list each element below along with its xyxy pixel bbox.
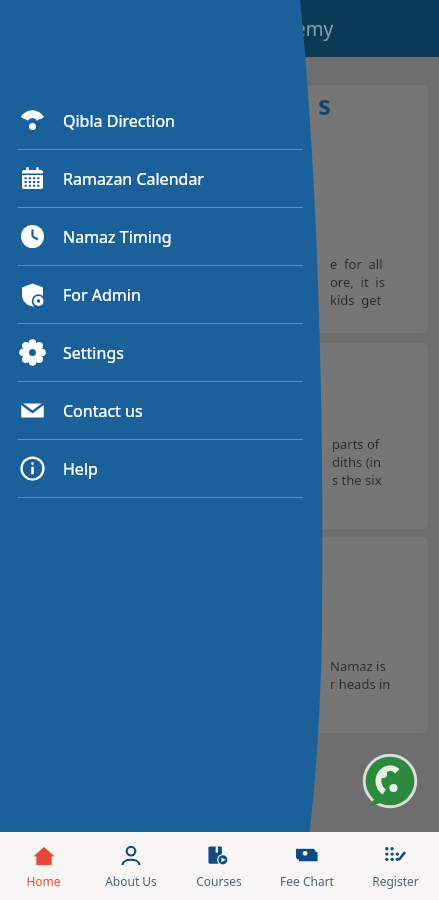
button[interactable]: Register (351, 832, 439, 900)
button[interactable]: Courses (175, 832, 263, 900)
button[interactable]: Qibla Direction (0, 92, 300, 149)
staticText: Namaz Timing (63, 226, 172, 248)
staticText: parts of diths (in s the six (332, 435, 382, 489)
button[interactable]: About Us (87, 832, 175, 900)
staticText: Quran Academy (190, 16, 334, 42)
staticText: Settings (63, 342, 124, 364)
staticText: Contact us (63, 400, 143, 422)
staticText: Namaz is r heads in (330, 657, 391, 693)
button[interactable]: Help (0, 440, 300, 497)
staticText: Qibla Direction (63, 110, 176, 132)
staticText: Register (372, 873, 419, 889)
staticText: s (318, 87, 332, 122)
button[interactable]: Ramazan Calendar (0, 150, 300, 207)
staticText: Courses (196, 873, 242, 889)
button[interactable]: Namaz Timing (0, 208, 300, 265)
button[interactable]: Home (0, 832, 87, 900)
button[interactable]: WhatsApp (361, 752, 419, 810)
button[interactable]: Fee Chart (263, 832, 351, 900)
staticText: Fee Chart (280, 873, 334, 889)
button[interactable]: For Admin (0, 266, 300, 323)
staticText: Home (26, 873, 61, 889)
staticText: About Us (105, 873, 157, 889)
staticText: Help (63, 458, 98, 480)
button[interactable]: Contact us (0, 382, 300, 439)
staticText: e for all ore, it is kids get (330, 255, 385, 309)
button[interactable]: Settings (0, 324, 300, 381)
staticText: For Admin (63, 284, 141, 306)
staticText: Ramazan Calendar (63, 168, 204, 190)
